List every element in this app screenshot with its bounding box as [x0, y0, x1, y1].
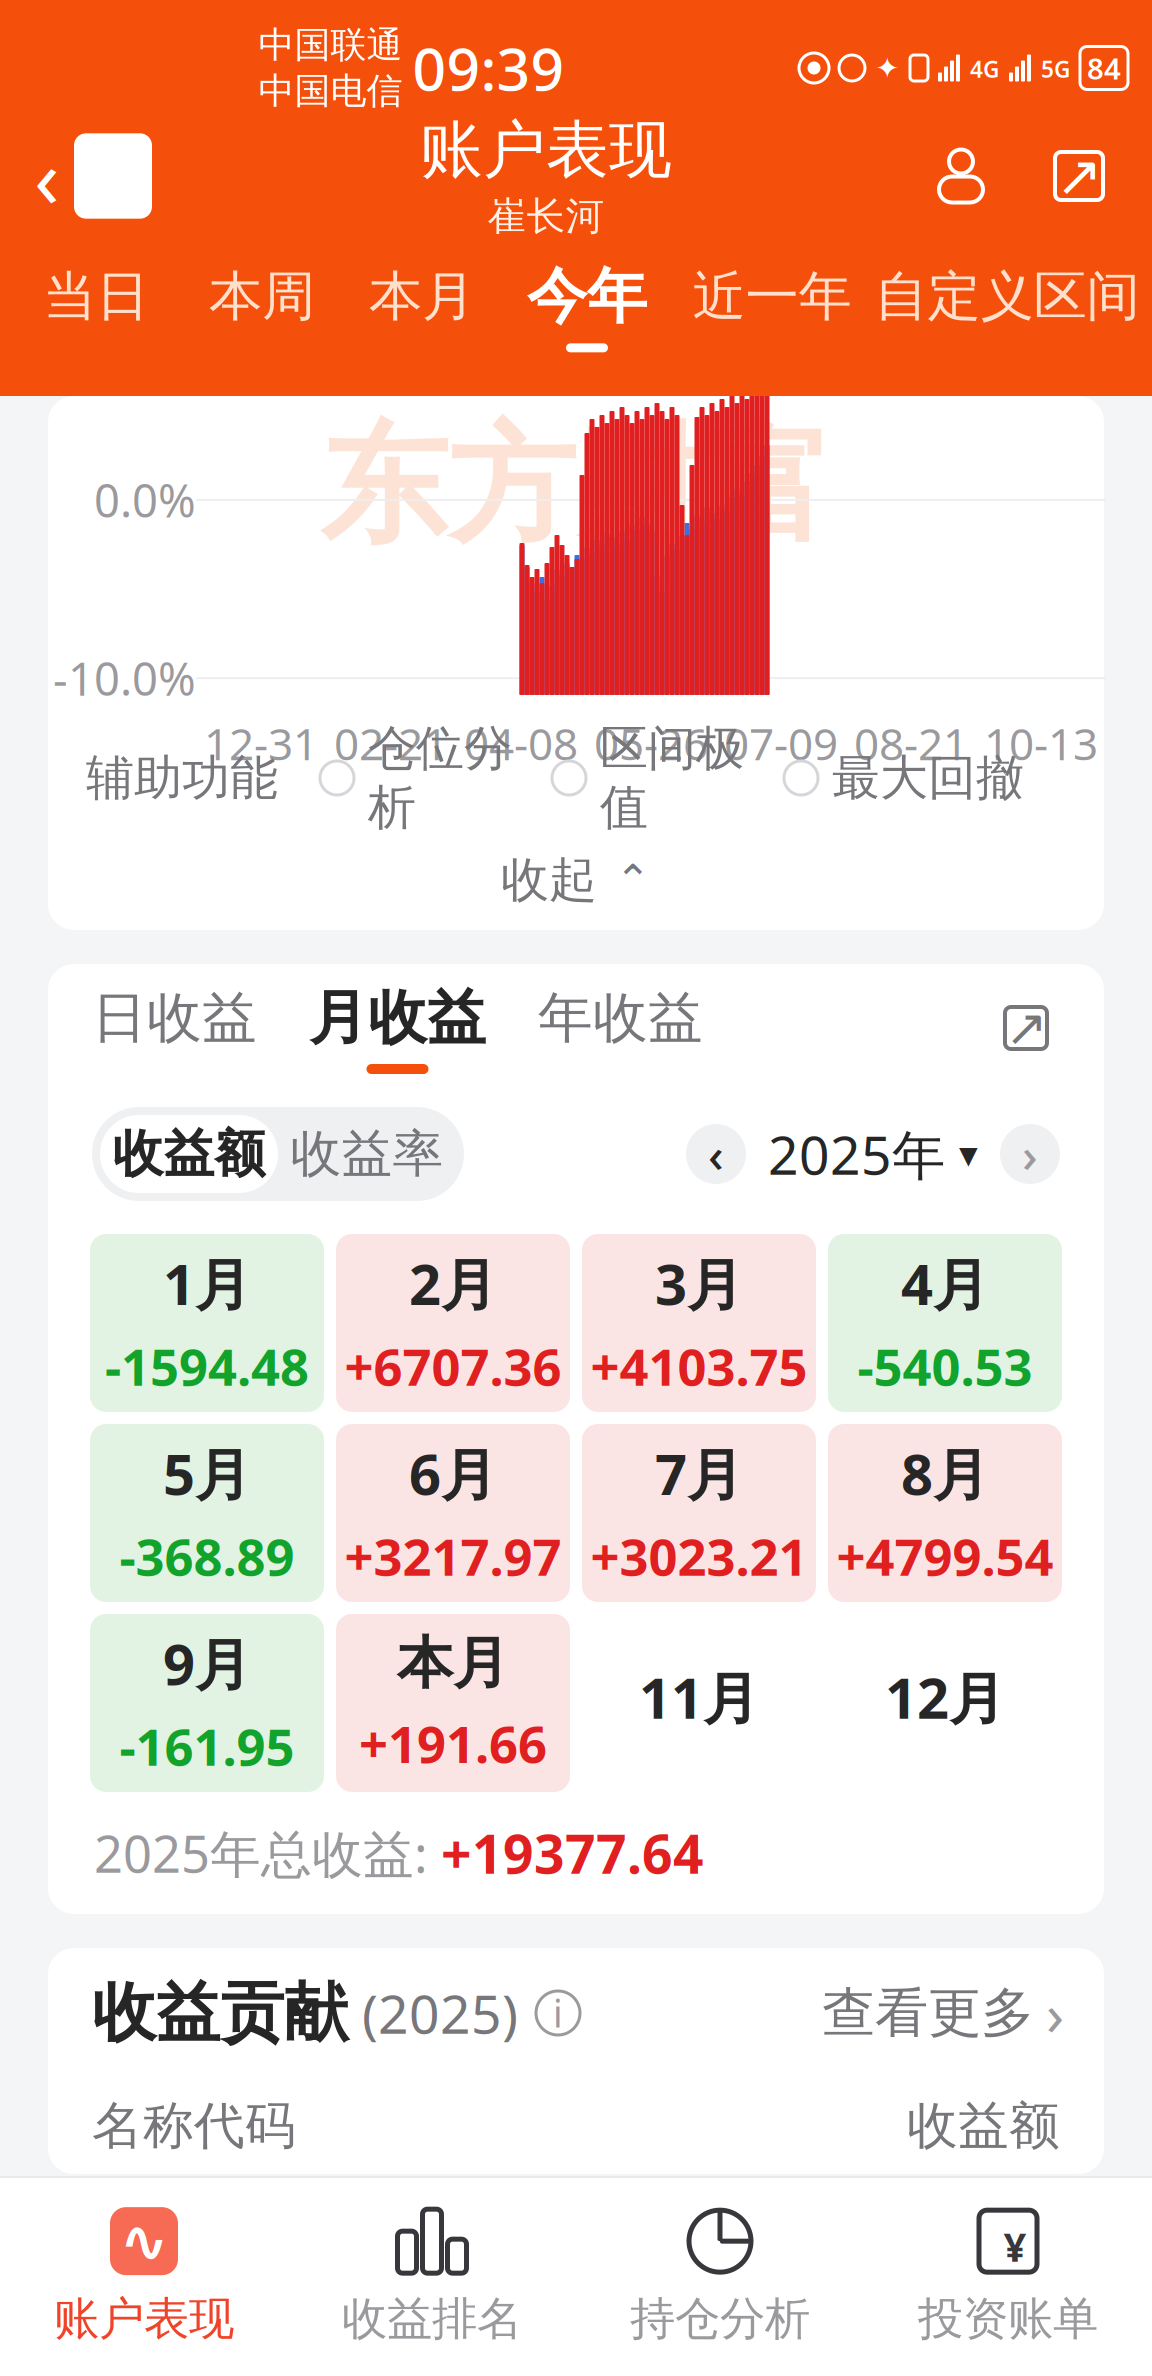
staticText: 本月 [397, 1629, 509, 1698]
staticText: 收益率 [290, 1123, 443, 1185]
button[interactable]: 2月 [336, 1234, 570, 1412]
button[interactable]: 返回 东方财富 [0, 116, 170, 236]
button[interactable]: 分享 [1040, 137, 1118, 215]
button[interactable]: ∿ [0, 2186, 288, 2368]
staticText: 东方财富 [320, 407, 832, 565]
button[interactable]: 持仓分析 [576, 2186, 864, 2368]
button[interactable]: 年收益 [538, 984, 703, 1071]
button[interactable]: 说明 [536, 1991, 580, 2035]
staticText: (2025) [348, 1978, 518, 2048]
button[interactable]: 6月 [336, 1424, 570, 1602]
button[interactable]: 收起 [48, 830, 1104, 930]
staticText: 2025年总收益: [94, 1819, 441, 1887]
staticText: ⌃ [615, 856, 651, 904]
staticText: 11月 [639, 1660, 759, 1734]
button[interactable]: 仓位分析 [320, 719, 512, 837]
staticText: ✦ [875, 51, 900, 85]
staticText: 收益排名 [342, 2291, 522, 2347]
staticText: 10-13 [984, 714, 1098, 772]
button[interactable]: 12月 [828, 1614, 1062, 1792]
staticText: -1594.48 [105, 1332, 309, 1400]
button[interactable]: 本月 [336, 1614, 570, 1792]
staticText: 4月 [901, 1246, 989, 1321]
staticText: 收益额 [112, 1123, 265, 1185]
staticText: › [1022, 1122, 1038, 1186]
button[interactable]: 8月 [828, 1424, 1062, 1602]
staticText: +191.66 [359, 1710, 547, 1777]
button[interactable]: 收益排名 [288, 2186, 576, 2368]
staticText: i [553, 1988, 563, 2038]
staticText: 账户表现 [54, 2291, 234, 2347]
staticText: 查看更多 [822, 1980, 1034, 2046]
button[interactable]: 收益率 [278, 1115, 456, 1193]
staticText: ‹ [708, 1122, 724, 1186]
staticText: -540.53 [857, 1332, 1032, 1400]
staticText: 12月 [885, 1660, 1005, 1734]
button[interactable]: 11月 [582, 1614, 816, 1792]
button[interactable]: 当日 [10, 236, 182, 376]
button[interactable]: 今年 [502, 236, 672, 376]
staticText: 自定义区间 [874, 264, 1139, 329]
staticText: 5G [1041, 54, 1070, 84]
button[interactable]: 7月 [582, 1424, 816, 1602]
button[interactable]: 日收益 [92, 984, 257, 1071]
staticText: 名称代码 [92, 2095, 296, 2157]
staticText: 02-21 [334, 714, 448, 772]
button[interactable]: 自定义区间 [872, 236, 1142, 376]
button[interactable]: 我的账户 [922, 137, 1000, 215]
staticText: 账户表现 [420, 112, 672, 189]
button[interactable]: 3月 [582, 1234, 816, 1412]
staticText: › [1046, 1974, 1064, 2052]
staticText: 04-08 [464, 714, 578, 772]
staticText: 近一年 [692, 264, 851, 329]
button[interactable]: 4月 [828, 1234, 1062, 1412]
staticText: -368.89 [119, 1522, 294, 1590]
button[interactable]: 分享收益 [988, 990, 1064, 1066]
button[interactable]: 本月 [342, 236, 502, 376]
staticText: 中国电信 [258, 69, 402, 113]
button[interactable]: 1月 [90, 1234, 324, 1412]
staticText: 05-26 [594, 714, 708, 772]
staticText: 收起 [501, 850, 597, 909]
staticText: 9月 [163, 1626, 251, 1701]
staticText: +4103.75 [590, 1332, 807, 1400]
staticText: 08-21 [854, 714, 968, 772]
staticText: +6707.36 [344, 1332, 561, 1400]
staticText: 07-09 [724, 714, 838, 772]
button[interactable]: 区间极值 [552, 719, 744, 837]
staticText: +3023.21 [590, 1522, 807, 1590]
button[interactable]: 月收益 [309, 982, 486, 1074]
staticText: 4G [970, 54, 999, 84]
staticText: 1月 [163, 1246, 251, 1321]
staticText: +3217.97 [344, 1522, 561, 1590]
staticText: 日收益 [92, 984, 257, 1051]
staticText: 2月 [409, 1246, 497, 1321]
button[interactable]: 9月 [90, 1614, 324, 1792]
staticText: ¥ [1003, 2220, 1026, 2273]
button[interactable]: 本周 [182, 236, 342, 376]
staticText: 辅助功能 [86, 748, 278, 807]
staticText: ‹ [34, 121, 60, 231]
button[interactable]: 最大回撤 [784, 748, 1024, 807]
button[interactable]: 收益额 [100, 1115, 278, 1193]
button[interactable]: 近一年 [672, 236, 872, 376]
staticText: 84 [1087, 48, 1121, 87]
staticText: 仓位分析 [368, 719, 512, 837]
staticText: ▾ [959, 1133, 978, 1175]
button[interactable]: 2025年 [768, 1119, 978, 1189]
staticText: 5月 [163, 1436, 251, 1511]
staticText: 中国联通 [258, 23, 402, 67]
button[interactable]: 下一年 [1000, 1124, 1060, 1184]
button[interactable]: ¥ [864, 2186, 1152, 2368]
button[interactable]: 5月 [90, 1424, 324, 1602]
staticText: +19377.64 [441, 1818, 704, 1888]
staticText: 7月 [655, 1436, 743, 1511]
staticText: 投资账单 [918, 2291, 1098, 2347]
staticText: 6月 [409, 1436, 497, 1511]
button[interactable]: 查看更多 [822, 1974, 1064, 2052]
staticText: ∿ [119, 2208, 168, 2274]
button[interactable]: 上一年 [686, 1124, 746, 1184]
staticText: 0.0% [94, 470, 196, 530]
